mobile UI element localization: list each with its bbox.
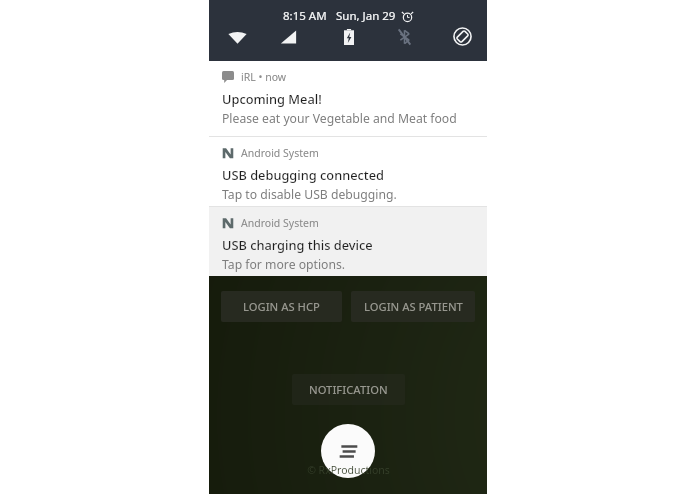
- staticText: Tap for more options.: [222, 256, 346, 273]
- button[interactable]: LOGIN AS PATIENT: [351, 291, 475, 322]
- staticText: USB debugging connected: [222, 166, 384, 183]
- staticText: Android System: [241, 146, 319, 160]
- button[interactable]: iRL • now: [209, 61, 487, 136]
- staticText: Android System: [241, 216, 319, 230]
- button[interactable]: Android System: [209, 207, 487, 276]
- button[interactable]: Show notification list: [321, 424, 375, 478]
- staticText: iRL • now: [241, 70, 287, 84]
- button[interactable]: LOGIN AS HCP: [221, 291, 342, 322]
- staticText: LOGIN AS PATIENT: [364, 299, 463, 314]
- staticText: Please eat your Vegetable and Meat food …: [222, 110, 477, 127]
- staticText: Upcoming Meal!: [222, 90, 322, 107]
- button[interactable]: Android System: [209, 137, 487, 206]
- staticText: LOGIN AS HCP: [243, 299, 320, 314]
- staticText: Sun, Jan 29: [336, 8, 396, 24]
- staticText: 8:15 AM: [283, 8, 327, 24]
- staticText: Tap to disable USB debugging.: [222, 186, 397, 203]
- staticText: © RxProductions: [307, 463, 390, 477]
- staticText: NOTIFICATION: [309, 382, 388, 397]
- staticText: USB charging this device: [222, 236, 373, 253]
- button[interactable]: NOTIFICATION: [292, 374, 405, 405]
